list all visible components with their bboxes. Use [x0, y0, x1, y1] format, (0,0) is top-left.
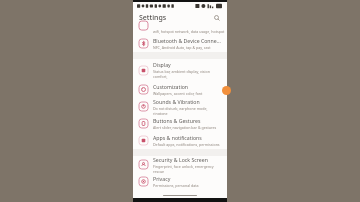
button[interactable]: Display	[133, 59, 227, 81]
button[interactable]: Customization	[133, 81, 227, 98]
button[interactable]: Search	[212, 13, 222, 23]
staticText: Bluetooth & Device Connection	[153, 37, 221, 44]
staticText: Security & Lock Screen	[153, 156, 208, 163]
staticText: Customization	[153, 83, 189, 90]
staticText: Default apps, notifications, permissions	[153, 142, 220, 147]
staticText: Apps & notifications	[153, 134, 202, 141]
staticText: Buttons & Gestures	[153, 117, 201, 124]
staticText: Status bar, ambient display, vision comf…	[153, 69, 221, 79]
other: Scroll indicator	[222, 86, 231, 95]
staticText: Settings	[139, 13, 167, 23]
staticText: Privacy	[153, 175, 171, 182]
staticText: Fingerprint, face unlock, emergency resc…	[153, 164, 221, 173]
staticText: Permissions, personal data	[153, 183, 199, 188]
button[interactable]: Bluetooth & Device Connection	[133, 35, 227, 52]
staticText: Display	[153, 61, 171, 68]
button[interactable]: Privacy	[133, 173, 227, 190]
staticText: wifi, hotspot network, data usage, hotsp…	[153, 29, 225, 34]
button[interactable]: Sounds & Vibration	[133, 98, 227, 115]
staticText: Alert slider, navigation bar & gestures	[153, 125, 217, 130]
button[interactable]: Security & Lock Screen	[133, 156, 227, 173]
button[interactable]: Apps & notifications	[133, 132, 227, 149]
staticText: Do not disturb, earphone mode, ringtone	[153, 106, 221, 115]
staticText: Wallpapers, accent color, font	[153, 91, 203, 96]
staticText: NFC, Android Auto, tap & pay, cast	[153, 45, 211, 50]
button[interactable]: Buttons & Gestures	[133, 115, 227, 132]
staticText: Sounds & Vibration	[153, 98, 200, 105]
